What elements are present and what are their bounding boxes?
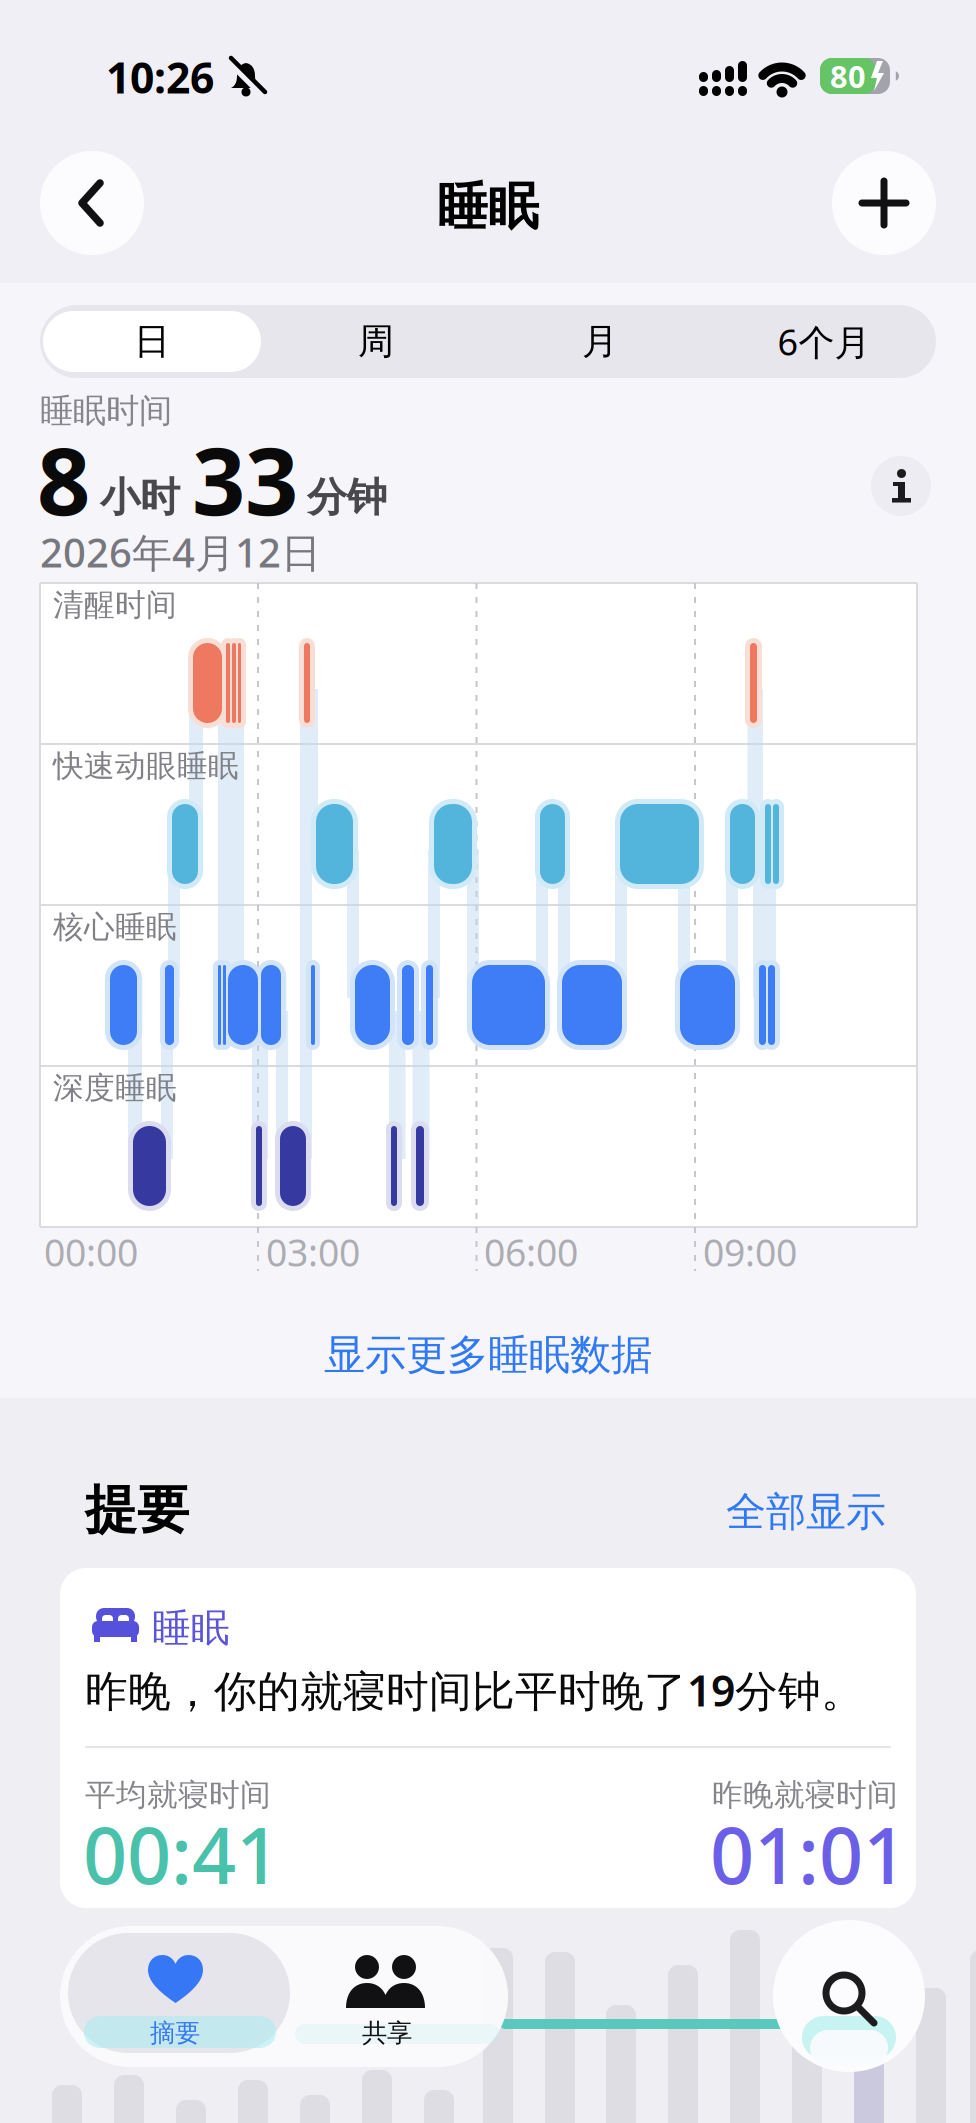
staticText: 核心睡眠 [53,908,177,946]
staticText: 01:01 [710,1803,907,1905]
staticText: 昨晚，你的就寝时间比平时晚了19分钟。 [85,1662,864,1718]
staticText: 深度睡眠 [53,1069,177,1107]
staticText: 平均就寝时间 [85,1776,271,1814]
button[interactable]: 睡眠 [60,1568,916,1908]
button[interactable]: 摘要 [85,1930,265,2056]
staticText: 昨晚就寝时间 [712,1776,898,1814]
staticText: 摘要 [150,2017,200,2048]
staticText: 睡眠时间 [40,390,172,431]
staticText: 提要 [85,1478,189,1542]
staticText: 睡眠 [437,176,539,238]
button[interactable]: 显示更多睡眠数据 [0,0,976,2123]
staticText: 00:41 [83,1803,280,1905]
staticText: 09:00 [703,1227,797,1277]
staticText: 80 [830,56,866,96]
staticText: 快速动眼睡眠 [53,747,239,785]
staticText: 06:00 [484,1227,578,1277]
button[interactable]: 返回 [40,151,144,255]
staticText: 分钟 [307,473,387,522]
staticText: 00:00 [44,1227,138,1277]
staticText: 全部显示 [726,1487,886,1536]
staticText: 清醒时间 [53,586,177,624]
button[interactable]: 日 [40,305,264,378]
button[interactable]: 关于睡眠时间 [871,456,931,516]
staticText: 6个月 [777,318,870,365]
staticText: 8 [37,417,90,541]
staticText: 月 [582,319,618,364]
button[interactable]: 6个月 [712,305,936,378]
staticText: 2026年4月12日 [40,525,321,578]
staticText: 03:00 [266,1227,360,1277]
staticText: 共享 [362,2017,412,2048]
staticText: 睡眠 [152,1604,230,1652]
button[interactable]: 搜索 [773,1920,925,2072]
button[interactable]: 月 [488,305,712,378]
staticText: 周 [358,319,394,364]
staticText: 小时 [100,473,180,522]
button[interactable]: 周 [264,305,488,378]
staticText: 10:26 [106,49,214,105]
button[interactable]: 添加 [832,151,936,255]
button[interactable]: 共享 [297,1930,477,2056]
button[interactable]: 全部显示 [646,1488,886,1536]
staticText: 日 [134,319,170,364]
staticText: 显示更多睡眠数据 [324,1330,652,1380]
staticText: 33 [192,417,298,541]
